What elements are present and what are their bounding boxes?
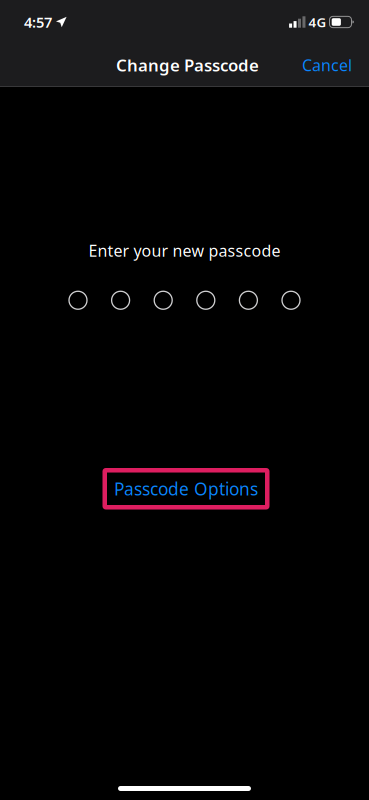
staticText: 4:57 [24, 12, 52, 32]
staticText: Enter your new passcode [88, 240, 280, 261]
button[interactable]: Passcode Options [105, 470, 267, 507]
staticText: Passcode Options [114, 477, 258, 500]
staticText: 4G [308, 13, 326, 31]
staticText: Change Passcode [116, 54, 259, 76]
staticText: Cancel [302, 54, 352, 76]
button[interactable]: Cancel [288, 42, 369, 88]
